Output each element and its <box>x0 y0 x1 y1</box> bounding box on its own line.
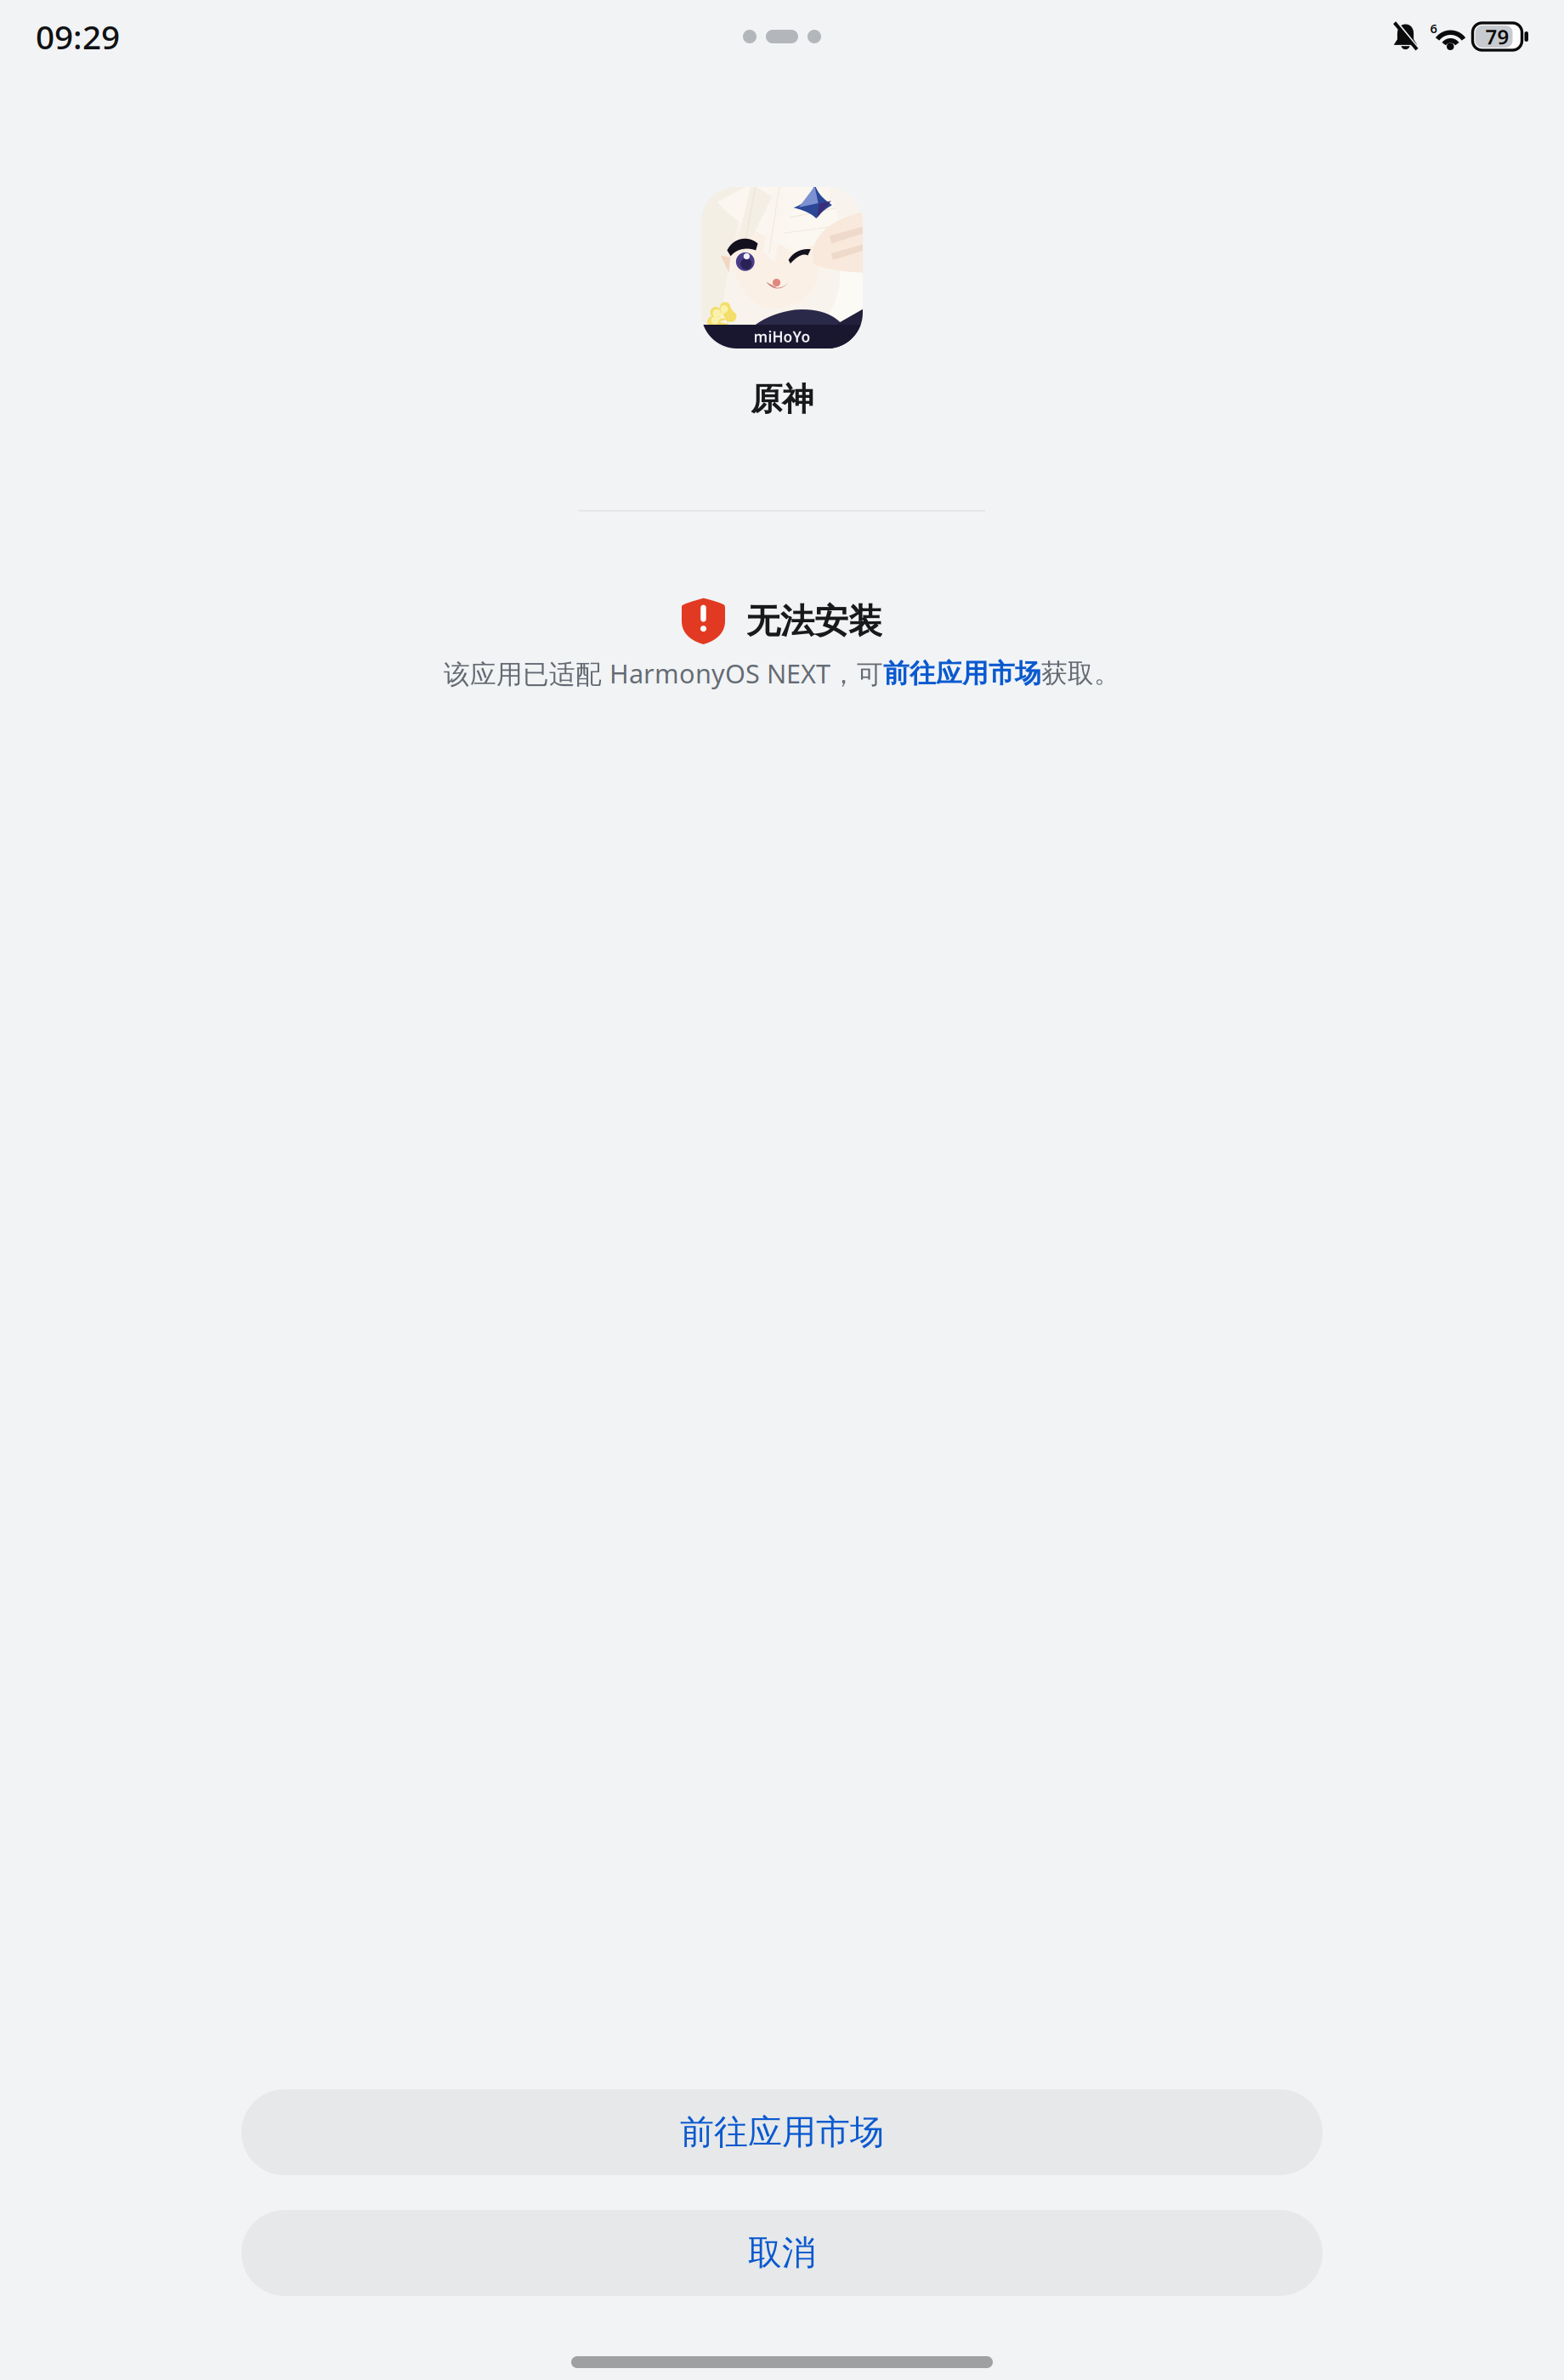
staticText: 无法安装 <box>746 600 882 642</box>
button[interactable]: 前往应用市场 <box>883 657 1041 689</box>
staticText: 79 <box>1485 23 1509 50</box>
staticText: 前往应用市场 <box>883 657 1041 689</box>
staticText: 原神 <box>751 380 813 419</box>
staticText: 09:29 <box>36 15 120 58</box>
button[interactable]: 前往应用市场 <box>241 2089 1323 2175</box>
staticText: 取消 <box>748 2232 816 2274</box>
staticText: 前往应用市场 <box>680 2111 884 2153</box>
staticText: 该应用已适配 HarmonyOS NEXT，可 <box>444 656 883 691</box>
staticText: 6 <box>1430 20 1437 37</box>
staticText: 获取。 <box>1041 657 1120 689</box>
staticText: miHoYo <box>754 327 810 346</box>
button[interactable]: 取消 <box>241 2210 1323 2296</box>
